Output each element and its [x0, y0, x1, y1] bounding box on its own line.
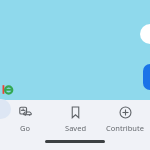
staticText: Saved — [65, 123, 86, 133]
button[interactable]: Go — [0, 104, 50, 150]
button[interactable]: Saved — [50, 104, 100, 150]
button[interactable]: Contribute — [100, 104, 150, 150]
button[interactable]: Layers — [140, 24, 150, 44]
staticText: Contribute — [106, 123, 144, 133]
button[interactable]: Directions — [143, 64, 150, 90]
staticText: Go — [20, 123, 30, 133]
